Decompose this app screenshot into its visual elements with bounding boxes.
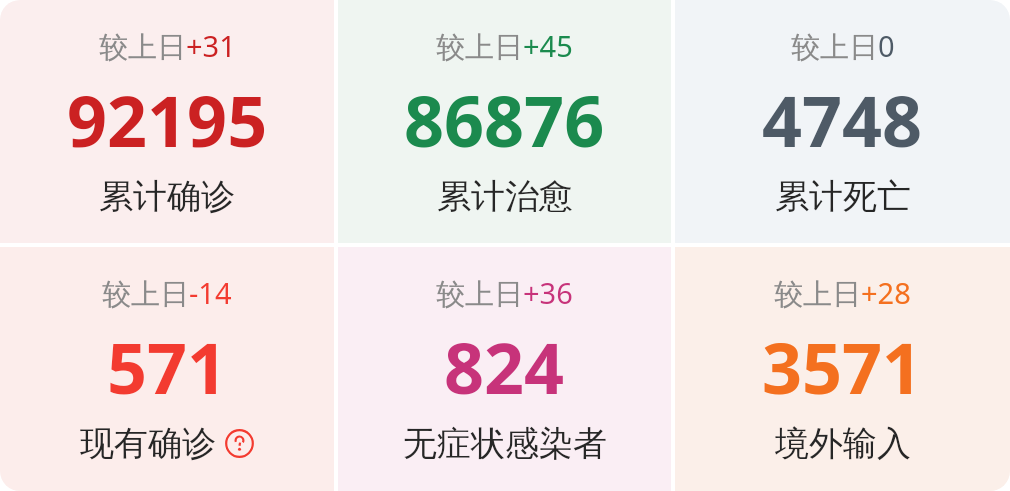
staticText: 571 (107, 319, 228, 414)
staticText: 824 (444, 319, 565, 414)
staticText: 累计治愈 (437, 175, 573, 218)
staticText: 92195 (67, 72, 268, 167)
button[interactable]: 较上日-14 (0, 247, 334, 491)
staticText: 累计死亡 (775, 175, 911, 218)
staticText: 无症状感染者 (403, 422, 607, 465)
staticText: 累计确诊 (99, 175, 235, 218)
staticText: 较上日+28 (774, 273, 911, 313)
staticText: 较上日+31 (99, 26, 236, 66)
staticText: 较上日+36 (436, 273, 573, 313)
staticText: 现有确诊 (80, 422, 216, 465)
button[interactable]: 较上日+45 (338, 0, 671, 243)
button[interactable]: 较上日0 (675, 0, 1010, 243)
button[interactable]: 较上日+28 (675, 247, 1010, 491)
staticText: 较上日0 (791, 26, 895, 66)
staticText: 较上日-14 (102, 273, 232, 313)
button[interactable]: 较上日+31 (0, 0, 334, 243)
staticText: 境外输入 (775, 422, 911, 465)
staticText: 86876 (404, 72, 605, 167)
staticText: 4748 (762, 72, 923, 167)
staticText: 较上日+45 (436, 26, 573, 66)
button[interactable]: 较上日+36 (338, 247, 671, 491)
button[interactable]: 帮助说明 (225, 429, 254, 458)
staticText: 3571 (762, 319, 923, 414)
